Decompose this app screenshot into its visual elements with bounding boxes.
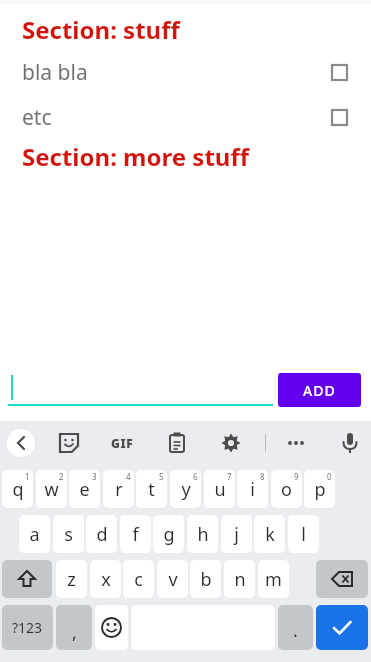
staticText: v — [168, 567, 178, 592]
staticText: q — [12, 477, 24, 502]
staticText: m — [265, 567, 282, 592]
staticText: x — [101, 567, 111, 592]
button[interactable] — [8, 373, 273, 406]
button[interactable]: z — [56, 560, 87, 598]
staticText: ?123 — [12, 618, 43, 637]
button[interactable]: o — [271, 470, 302, 508]
staticText: y — [181, 477, 191, 502]
button[interactable]: Back — [7, 429, 35, 457]
button[interactable]: w — [36, 470, 67, 508]
button[interactable]: l — [288, 515, 319, 553]
button[interactable]: More options — [282, 429, 310, 457]
button[interactable]: Section: stuff — [22, 13, 180, 46]
staticText: k — [265, 522, 275, 547]
button[interactable]: Enter — [316, 605, 368, 650]
staticText: 5 — [159, 471, 164, 482]
staticText: ADD — [303, 381, 336, 400]
button[interactable]: u — [204, 470, 235, 508]
button[interactable]: n — [224, 560, 255, 598]
staticText: r — [115, 477, 123, 502]
button[interactable]: v — [157, 560, 188, 598]
button[interactable]: GIF — [108, 429, 136, 457]
button[interactable]: ADD — [278, 373, 361, 407]
staticText: f — [132, 522, 139, 547]
staticText: s — [64, 522, 73, 547]
button[interactable]: m — [258, 560, 289, 598]
button[interactable]: y — [170, 470, 201, 508]
staticText: i — [250, 477, 255, 502]
staticText: a — [29, 522, 40, 547]
staticText: d — [96, 522, 108, 547]
staticText: z — [67, 567, 76, 592]
button[interactable]: Section: more stuff — [22, 140, 249, 173]
button[interactable]: Backspace — [316, 560, 368, 598]
staticText: o — [281, 477, 292, 502]
button[interactable]: , — [56, 605, 92, 650]
button[interactable]: i — [237, 470, 268, 508]
staticText: 6 — [193, 471, 198, 482]
button[interactable]: bla bla — [22, 50, 371, 95]
button[interactable]: s — [53, 515, 84, 553]
staticText: e — [79, 477, 90, 502]
staticText: c — [134, 567, 143, 592]
button[interactable]: x — [90, 560, 121, 598]
button[interactable]: . — [278, 605, 313, 650]
staticText: 7 — [227, 471, 232, 482]
button[interactable]: g — [153, 515, 184, 553]
staticText: j — [234, 522, 239, 547]
staticText: p — [314, 477, 326, 502]
staticText: 2 — [59, 471, 64, 482]
button[interactable]: c — [123, 560, 154, 598]
button[interactable]: h — [187, 515, 218, 553]
staticText: 4 — [126, 471, 131, 482]
staticText: w — [44, 477, 59, 502]
button[interactable]: Shift — [2, 560, 52, 598]
staticText: t — [148, 477, 155, 502]
button[interactable]: etc — [22, 95, 371, 140]
staticText: g — [163, 522, 175, 547]
button[interactable]: Voice input — [336, 429, 364, 457]
staticText: 3 — [92, 471, 97, 482]
staticText: 0 — [327, 471, 332, 482]
staticText: u — [214, 477, 226, 502]
staticText: b — [200, 567, 212, 592]
button[interactable]: k — [254, 515, 285, 553]
button[interactable]: r — [103, 470, 134, 508]
staticText: etc — [22, 103, 52, 132]
staticText: h — [197, 522, 209, 547]
button[interactable]: b — [190, 560, 221, 598]
button[interactable]: t — [136, 470, 167, 508]
button[interactable]: Emoji — [95, 605, 128, 650]
staticText: . — [293, 618, 298, 643]
button[interactable]: ?123 — [2, 605, 53, 650]
button[interactable]: p — [304, 470, 335, 508]
button[interactable]: q — [2, 470, 33, 508]
button[interactable]: e — [69, 470, 100, 508]
button[interactable]: Settings — [217, 429, 245, 457]
button[interactable]: a — [19, 515, 50, 553]
staticText: l — [301, 522, 306, 547]
button[interactable]: Clipboard — [163, 429, 191, 457]
button[interactable]: j — [221, 515, 252, 553]
button[interactable]: Stickers — [55, 429, 83, 457]
staticText: 9 — [294, 471, 299, 482]
button[interactable]: f — [120, 515, 151, 553]
staticText: GIF — [111, 435, 134, 451]
staticText: 8 — [260, 471, 265, 482]
button[interactable]: d — [86, 515, 117, 553]
staticText: bla bla — [22, 58, 88, 87]
staticText: 1 — [25, 471, 30, 482]
staticText: , — [72, 620, 77, 645]
staticText: n — [234, 567, 246, 592]
